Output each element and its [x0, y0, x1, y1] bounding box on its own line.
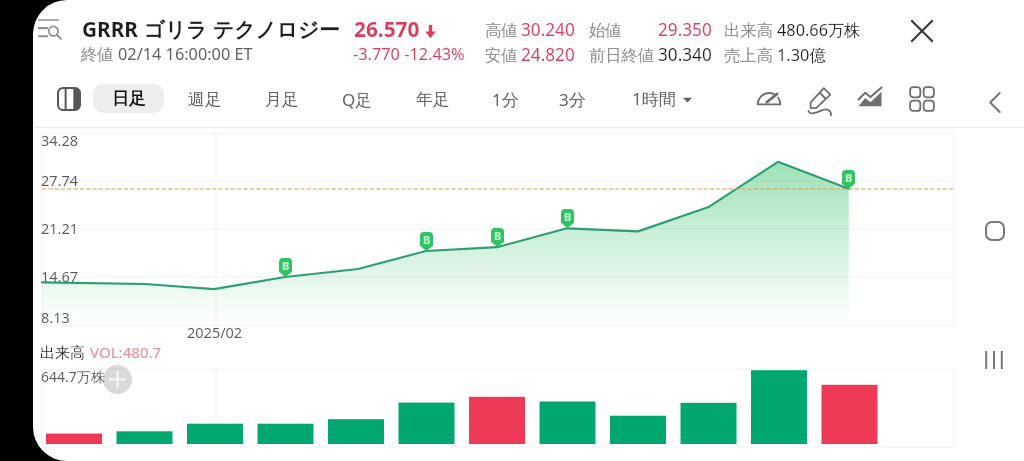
button[interactable]: Split view — [46, 76, 92, 122]
button[interactable]: Back — [972, 79, 1018, 125]
button[interactable]: 週足 — [170, 85, 240, 114]
button[interactable]: Q足 — [322, 85, 392, 114]
staticText: 27.74 — [41, 170, 79, 190]
staticText: 売上高 — [724, 45, 773, 66]
staticText: 8.13 — [41, 307, 70, 327]
button[interactable]: 年足 — [398, 85, 468, 114]
staticText: 1.30億 — [777, 44, 826, 66]
staticText: B — [494, 228, 502, 243]
staticText: 出来高 — [40, 342, 90, 363]
button[interactable]: Indicators — [746, 76, 792, 122]
staticText: 14.67 — [41, 266, 79, 286]
staticText: 24.820 — [521, 43, 575, 66]
staticText: B — [423, 232, 431, 247]
staticText: 月足 — [265, 89, 299, 110]
staticText: 644.7万株 — [41, 367, 105, 386]
button[interactable]: Close — [899, 8, 945, 54]
staticText: 日足 — [112, 88, 146, 109]
staticText: 始値 — [589, 20, 622, 41]
staticText: 2025/02 — [187, 322, 243, 342]
staticText: GRRR ゴリラ テクノロジー — [82, 15, 340, 43]
button[interactable]: Draw — [797, 76, 843, 122]
button[interactable]: Recent apps — [971, 337, 1017, 383]
staticText: 21.21 — [41, 218, 79, 238]
staticText: 1時間 — [632, 87, 676, 110]
staticText: VOL:480.7 — [90, 342, 162, 363]
staticText: B — [564, 209, 572, 224]
staticText: 年足 — [416, 89, 450, 110]
button[interactable]: 3分 — [537, 85, 607, 114]
button[interactable]: Watchlist search — [33, 6, 73, 52]
staticText: B — [282, 258, 290, 273]
staticText: 終値 — [81, 43, 118, 65]
staticText: 前日終値 — [589, 45, 655, 66]
staticText: 26.570 — [354, 15, 420, 43]
button[interactable]: 1時間 — [618, 84, 706, 113]
staticText: 高値 — [485, 20, 518, 41]
staticText: 02/14 16:00:00 ET — [118, 43, 253, 65]
button[interactable]: More tools — [899, 76, 945, 122]
staticText: 1分 — [492, 88, 519, 111]
staticText: 480.66万株 — [777, 19, 861, 41]
button[interactable]: Chart style — [847, 76, 893, 122]
staticText: 30.240 — [521, 18, 575, 41]
staticText: 3分 — [559, 88, 586, 111]
button[interactable]: Add indicator — [103, 365, 132, 394]
staticText: -3.770 -12.43% — [353, 43, 465, 65]
button[interactable]: 月足 — [247, 85, 317, 114]
button[interactable]: 1分 — [470, 85, 540, 114]
staticText: 34.28 — [41, 130, 79, 150]
staticText: 安値 — [485, 45, 518, 66]
staticText: 週足 — [188, 89, 222, 110]
staticText: 出来高 — [724, 20, 773, 41]
staticText: Q足 — [342, 88, 373, 111]
staticText: 30.340 — [658, 43, 712, 66]
button[interactable]: 日足 — [93, 84, 164, 113]
button[interactable]: Home — [972, 208, 1018, 254]
staticText: B — [845, 170, 853, 185]
staticText: 29.350 — [658, 18, 712, 41]
